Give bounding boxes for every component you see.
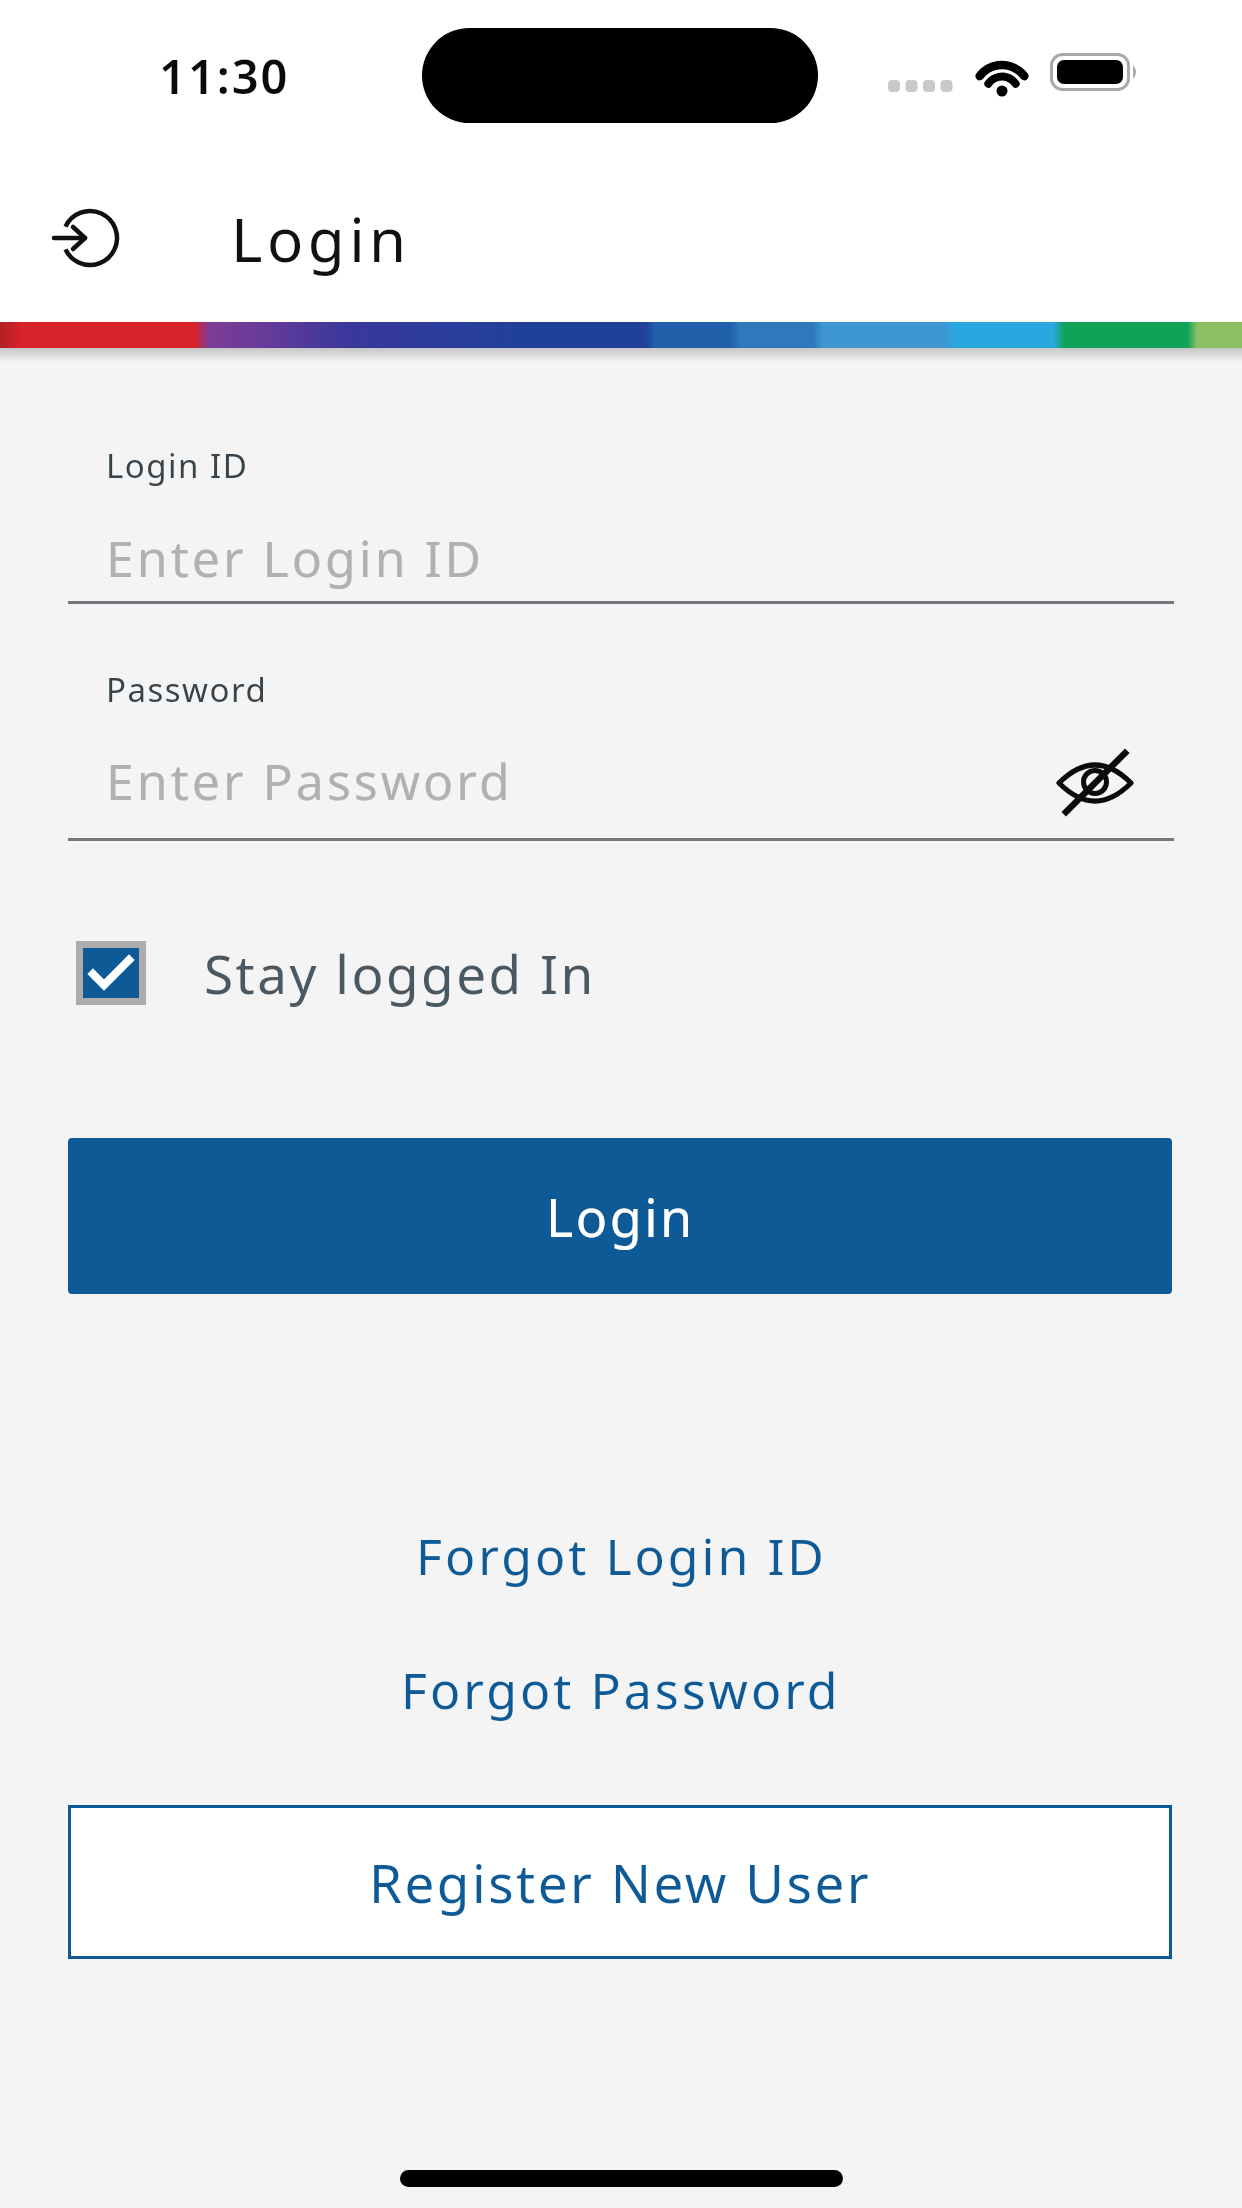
button[interactable]: Login [68,1138,1172,1294]
staticText: Forgot Password [401,1656,841,1724]
staticText: Enter Login ID [106,524,485,592]
staticText: Login [546,1181,695,1252]
button[interactable] [40,192,140,284]
button[interactable] [1040,736,1150,832]
staticText: Login ID [106,443,249,488]
button[interactable]: Forgot Password [401,1656,841,1724]
staticText: 11:30 [159,44,290,108]
staticText: Forgot Login ID [416,1522,827,1590]
staticText: Password [106,667,268,712]
staticText: Login [231,198,411,280]
button[interactable]: Forgot Login ID [416,1522,827,1590]
staticText: Register New User [369,1846,872,1918]
staticText: Enter Password [106,747,513,815]
staticText: Stay logged In [204,937,596,1009]
button[interactable]: Register New User [68,1805,1172,1959]
button[interactable]: Stay logged In [76,930,596,1016]
